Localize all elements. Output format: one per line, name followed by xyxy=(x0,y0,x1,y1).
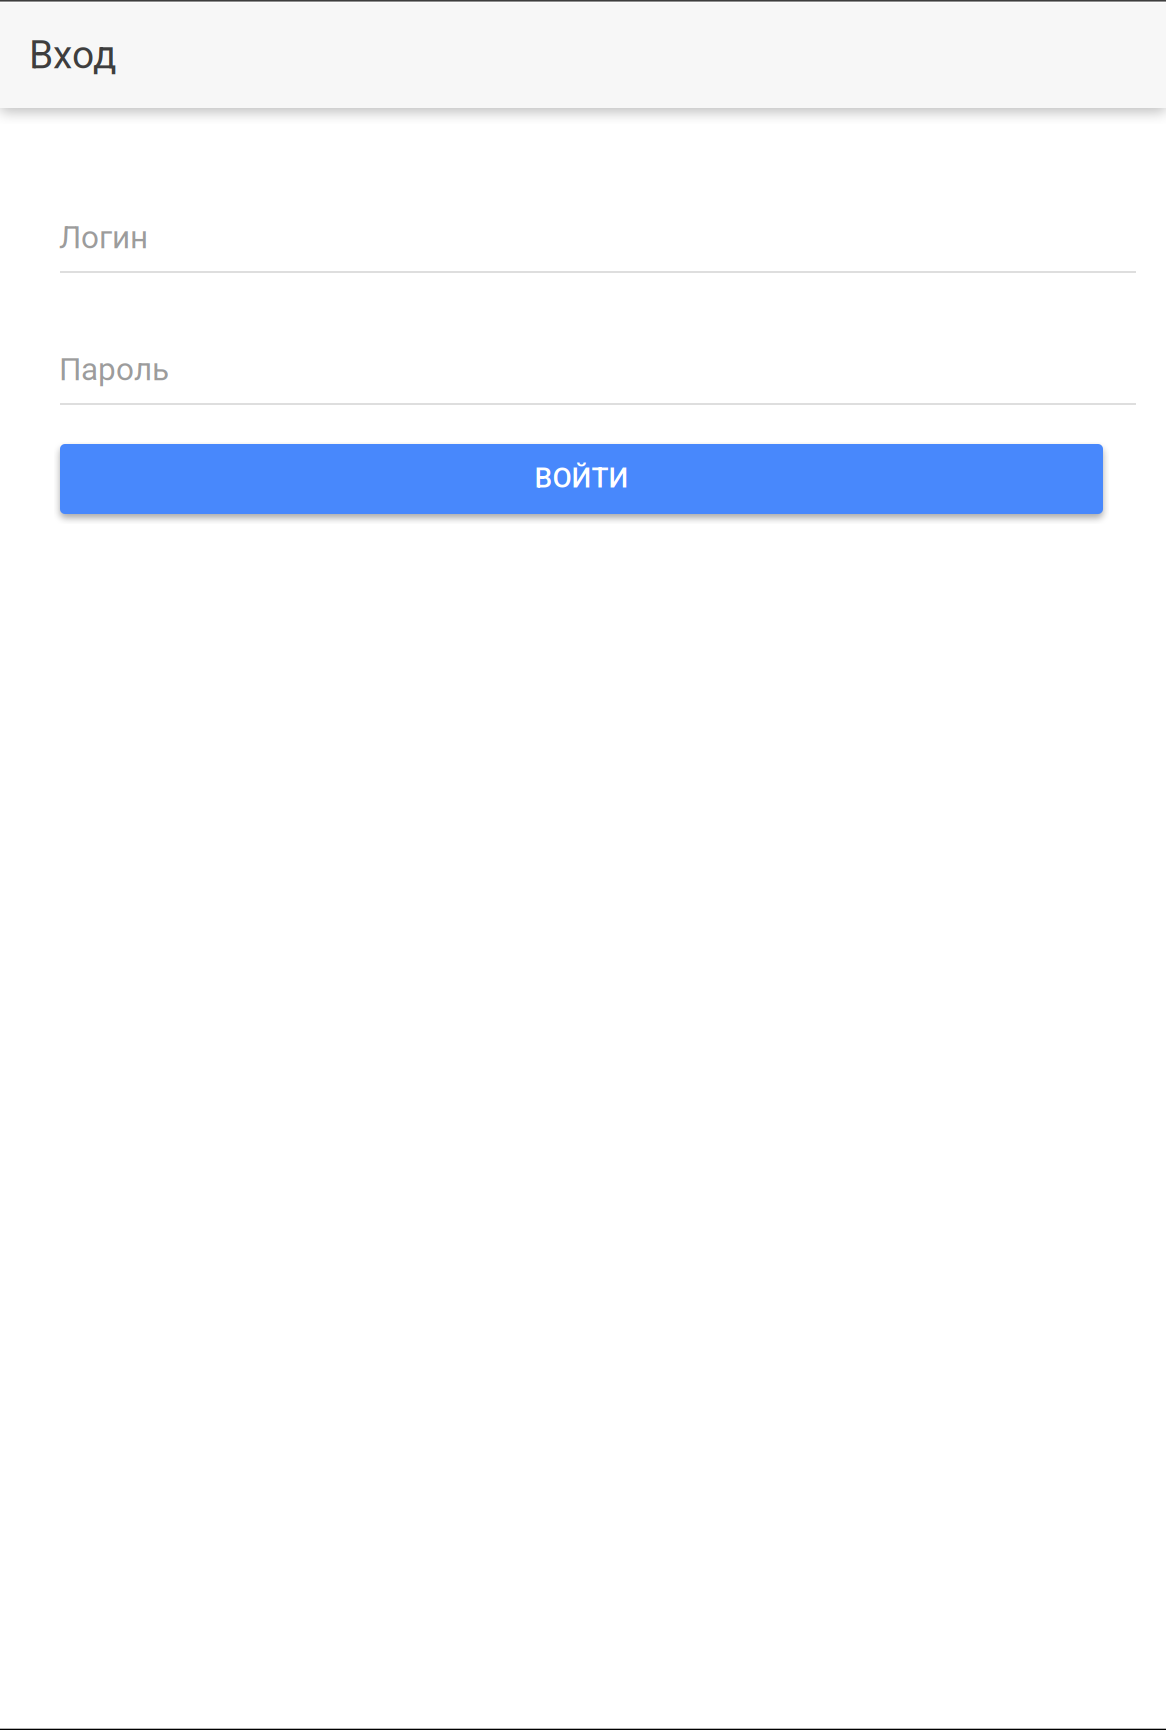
staticText: Пароль xyxy=(59,351,169,388)
button[interactable]: Логин xyxy=(60,181,1136,273)
staticText: Вход xyxy=(29,32,116,78)
button[interactable]: Пароль xyxy=(60,313,1136,405)
button[interactable]: ВОЙТИ xyxy=(60,444,1103,514)
staticText: Логин xyxy=(59,219,148,256)
staticText: ВОЙТИ xyxy=(534,462,628,494)
